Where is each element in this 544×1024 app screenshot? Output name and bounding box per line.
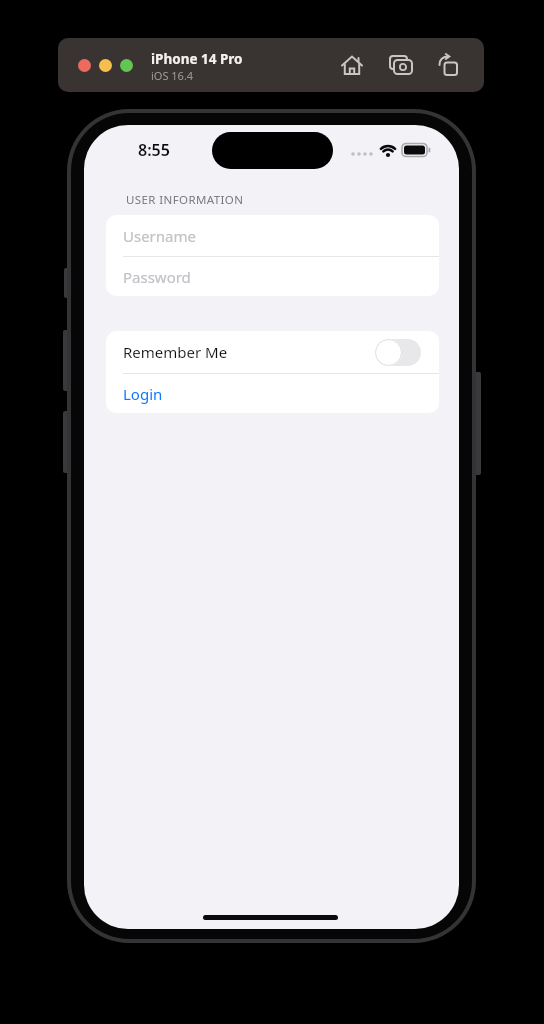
button[interactable] xyxy=(120,59,133,72)
staticText: Password xyxy=(123,267,191,287)
button[interactable]: Login xyxy=(106,374,439,413)
button[interactable]: Password xyxy=(106,257,439,296)
staticText: iOS 16.4 xyxy=(151,68,194,83)
staticText: iPhone 14 Pro xyxy=(151,50,243,68)
button[interactable] xyxy=(388,53,414,77)
button[interactable] xyxy=(78,59,91,72)
staticText: Username xyxy=(123,226,196,246)
button[interactable]: Username xyxy=(106,215,439,256)
button[interactable] xyxy=(99,59,112,72)
staticText: 8:55 xyxy=(138,139,170,161)
staticText: Login xyxy=(123,384,163,404)
staticText: USER INFORMATION xyxy=(126,192,244,208)
staticText: Remember Me xyxy=(123,342,228,362)
button[interactable]: Remember Me xyxy=(106,331,439,373)
button[interactable] xyxy=(375,339,421,366)
button[interactable] xyxy=(340,54,364,76)
button[interactable] xyxy=(436,53,460,77)
